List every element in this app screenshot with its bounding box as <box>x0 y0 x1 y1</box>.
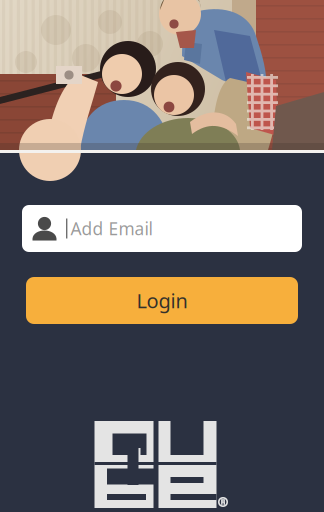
button[interactable]: Add Email <box>22 205 302 252</box>
button[interactable]: Login <box>26 277 298 324</box>
staticText: Add Email <box>70 217 152 240</box>
staticText: Login <box>136 287 187 314</box>
